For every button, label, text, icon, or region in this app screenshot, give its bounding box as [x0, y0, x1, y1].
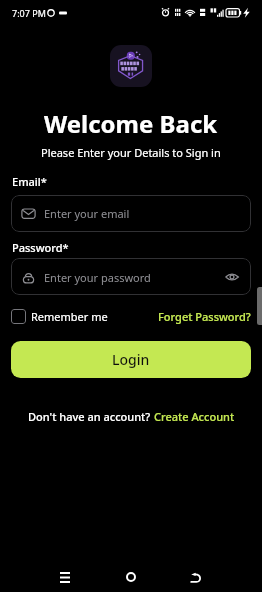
button[interactable]: Enter your email [11, 195, 251, 232]
button[interactable]: Login [11, 341, 251, 378]
button[interactable]: Recent apps [50, 562, 80, 592]
staticText: Welcome Back [44, 107, 218, 140]
staticText: Please Enter your Details to Sign in [41, 145, 221, 160]
staticText: Remember me [31, 309, 108, 324]
staticText: 7:07 PM [12, 7, 46, 19]
button[interactable]: Show password [224, 269, 240, 285]
staticText: Enter your email [44, 206, 130, 221]
staticText: Email* [12, 174, 47, 189]
button[interactable]: Back [181, 562, 211, 592]
staticText: Login [112, 350, 150, 369]
button[interactable]: Remember me [11, 306, 108, 327]
button[interactable]: Create Account [154, 409, 235, 424]
button[interactable]: Forget Password? [158, 306, 251, 327]
staticText: Don't have an account? [28, 409, 154, 424]
button[interactable]: Home [116, 562, 146, 592]
staticText: Password* [12, 240, 69, 255]
staticText: Enter your password [44, 270, 151, 285]
button[interactable]: Enter your password [11, 258, 251, 295]
